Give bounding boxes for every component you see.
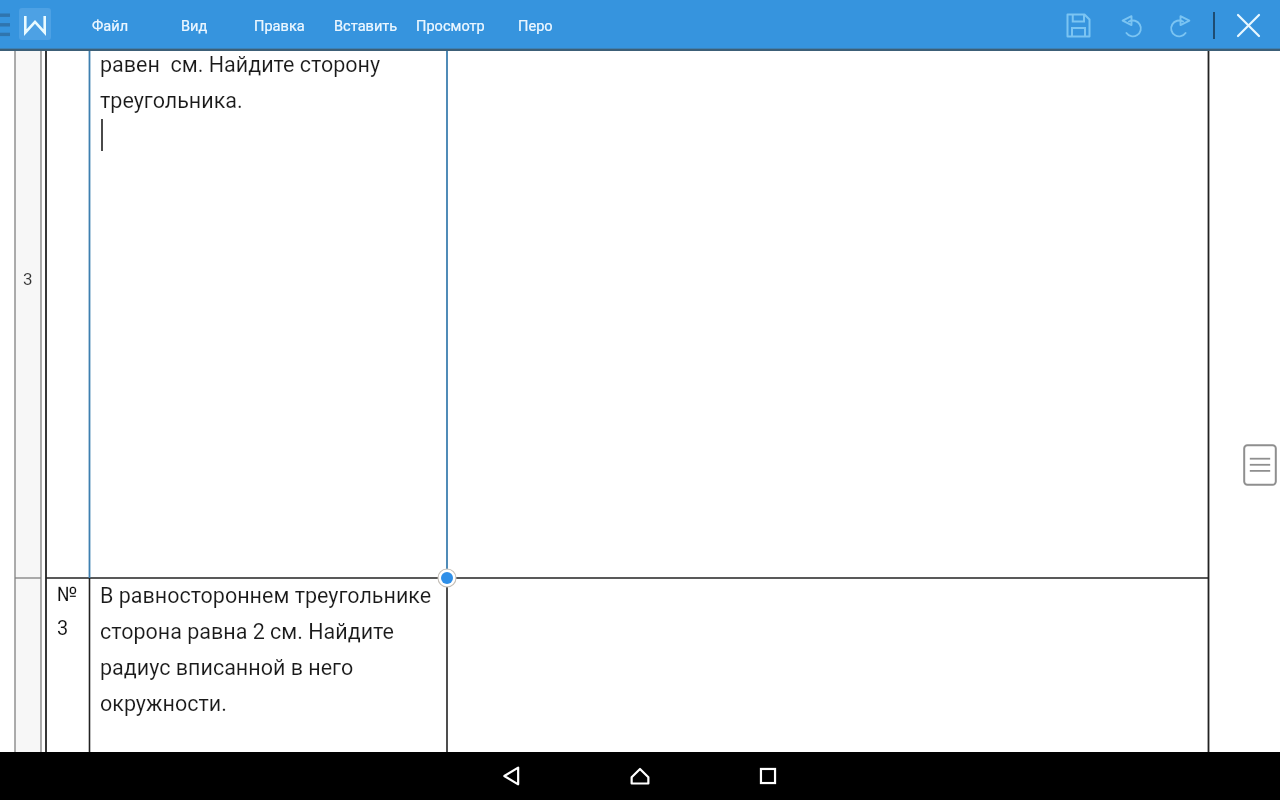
staticText: № 3 xyxy=(57,582,78,640)
button[interactable]: Outline xyxy=(1238,437,1280,493)
staticText: Файл xyxy=(92,17,129,34)
staticText: равен см. Найдите сторону треугольника. xyxy=(100,52,381,113)
button[interactable]: Back xyxy=(492,756,532,796)
button[interactable]: Перо xyxy=(506,0,565,50)
staticText: В равностороннем треугольнике сторона ра… xyxy=(100,583,432,716)
staticText: Вид xyxy=(181,17,208,34)
button[interactable]: Вид xyxy=(169,0,220,50)
staticText: 3 xyxy=(23,269,33,289)
button[interactable]: Вставить xyxy=(322,0,410,50)
staticText: Вставить xyxy=(334,17,398,34)
button[interactable]: Menu xyxy=(0,8,10,42)
button[interactable]: Close xyxy=(1230,7,1267,44)
button[interactable]: Home xyxy=(620,756,660,796)
button[interactable]: Redo xyxy=(1162,7,1199,44)
button[interactable]: Recents xyxy=(748,756,788,796)
button[interactable]: Правка xyxy=(242,0,317,50)
button[interactable]: Writer xyxy=(19,8,51,40)
button[interactable]: Файл xyxy=(80,0,141,50)
button[interactable]: Просмотр xyxy=(404,0,497,50)
button[interactable]: Undo xyxy=(1112,7,1149,44)
staticText: Просмотр xyxy=(416,17,485,34)
staticText: Правка xyxy=(254,17,305,34)
staticText: Перо xyxy=(518,17,553,34)
button[interactable]: Save xyxy=(1060,7,1097,44)
